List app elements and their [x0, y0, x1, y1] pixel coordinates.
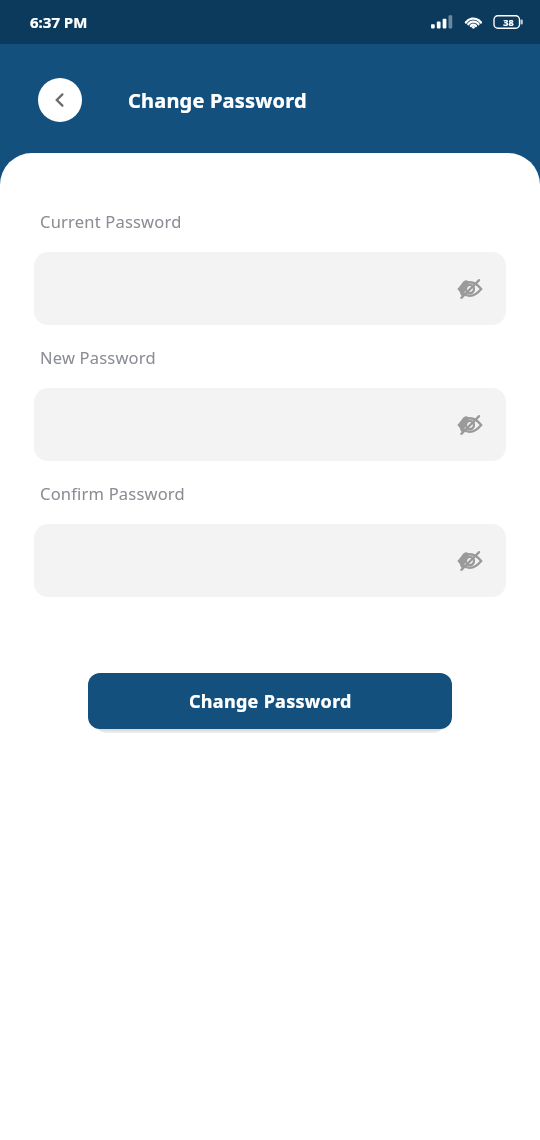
button[interactable]: Show password: [34, 524, 506, 597]
button[interactable]: Show password: [34, 252, 506, 325]
staticText: New Password: [40, 346, 156, 368]
staticText: Change Password: [189, 689, 352, 714]
staticText: Confirm Password: [40, 482, 185, 504]
staticText: 38: [503, 16, 514, 28]
button[interactable]: Show password: [448, 403, 492, 447]
button[interactable]: Back: [38, 78, 82, 122]
button[interactable]: Change Password: [88, 673, 452, 729]
button[interactable]: Show password: [34, 388, 506, 461]
button[interactable]: Show password: [448, 539, 492, 583]
staticText: Change Password: [128, 87, 307, 114]
staticText: 6:37 PM: [30, 12, 88, 32]
staticText: Current Password: [40, 210, 182, 232]
button[interactable]: Show password: [448, 267, 492, 311]
